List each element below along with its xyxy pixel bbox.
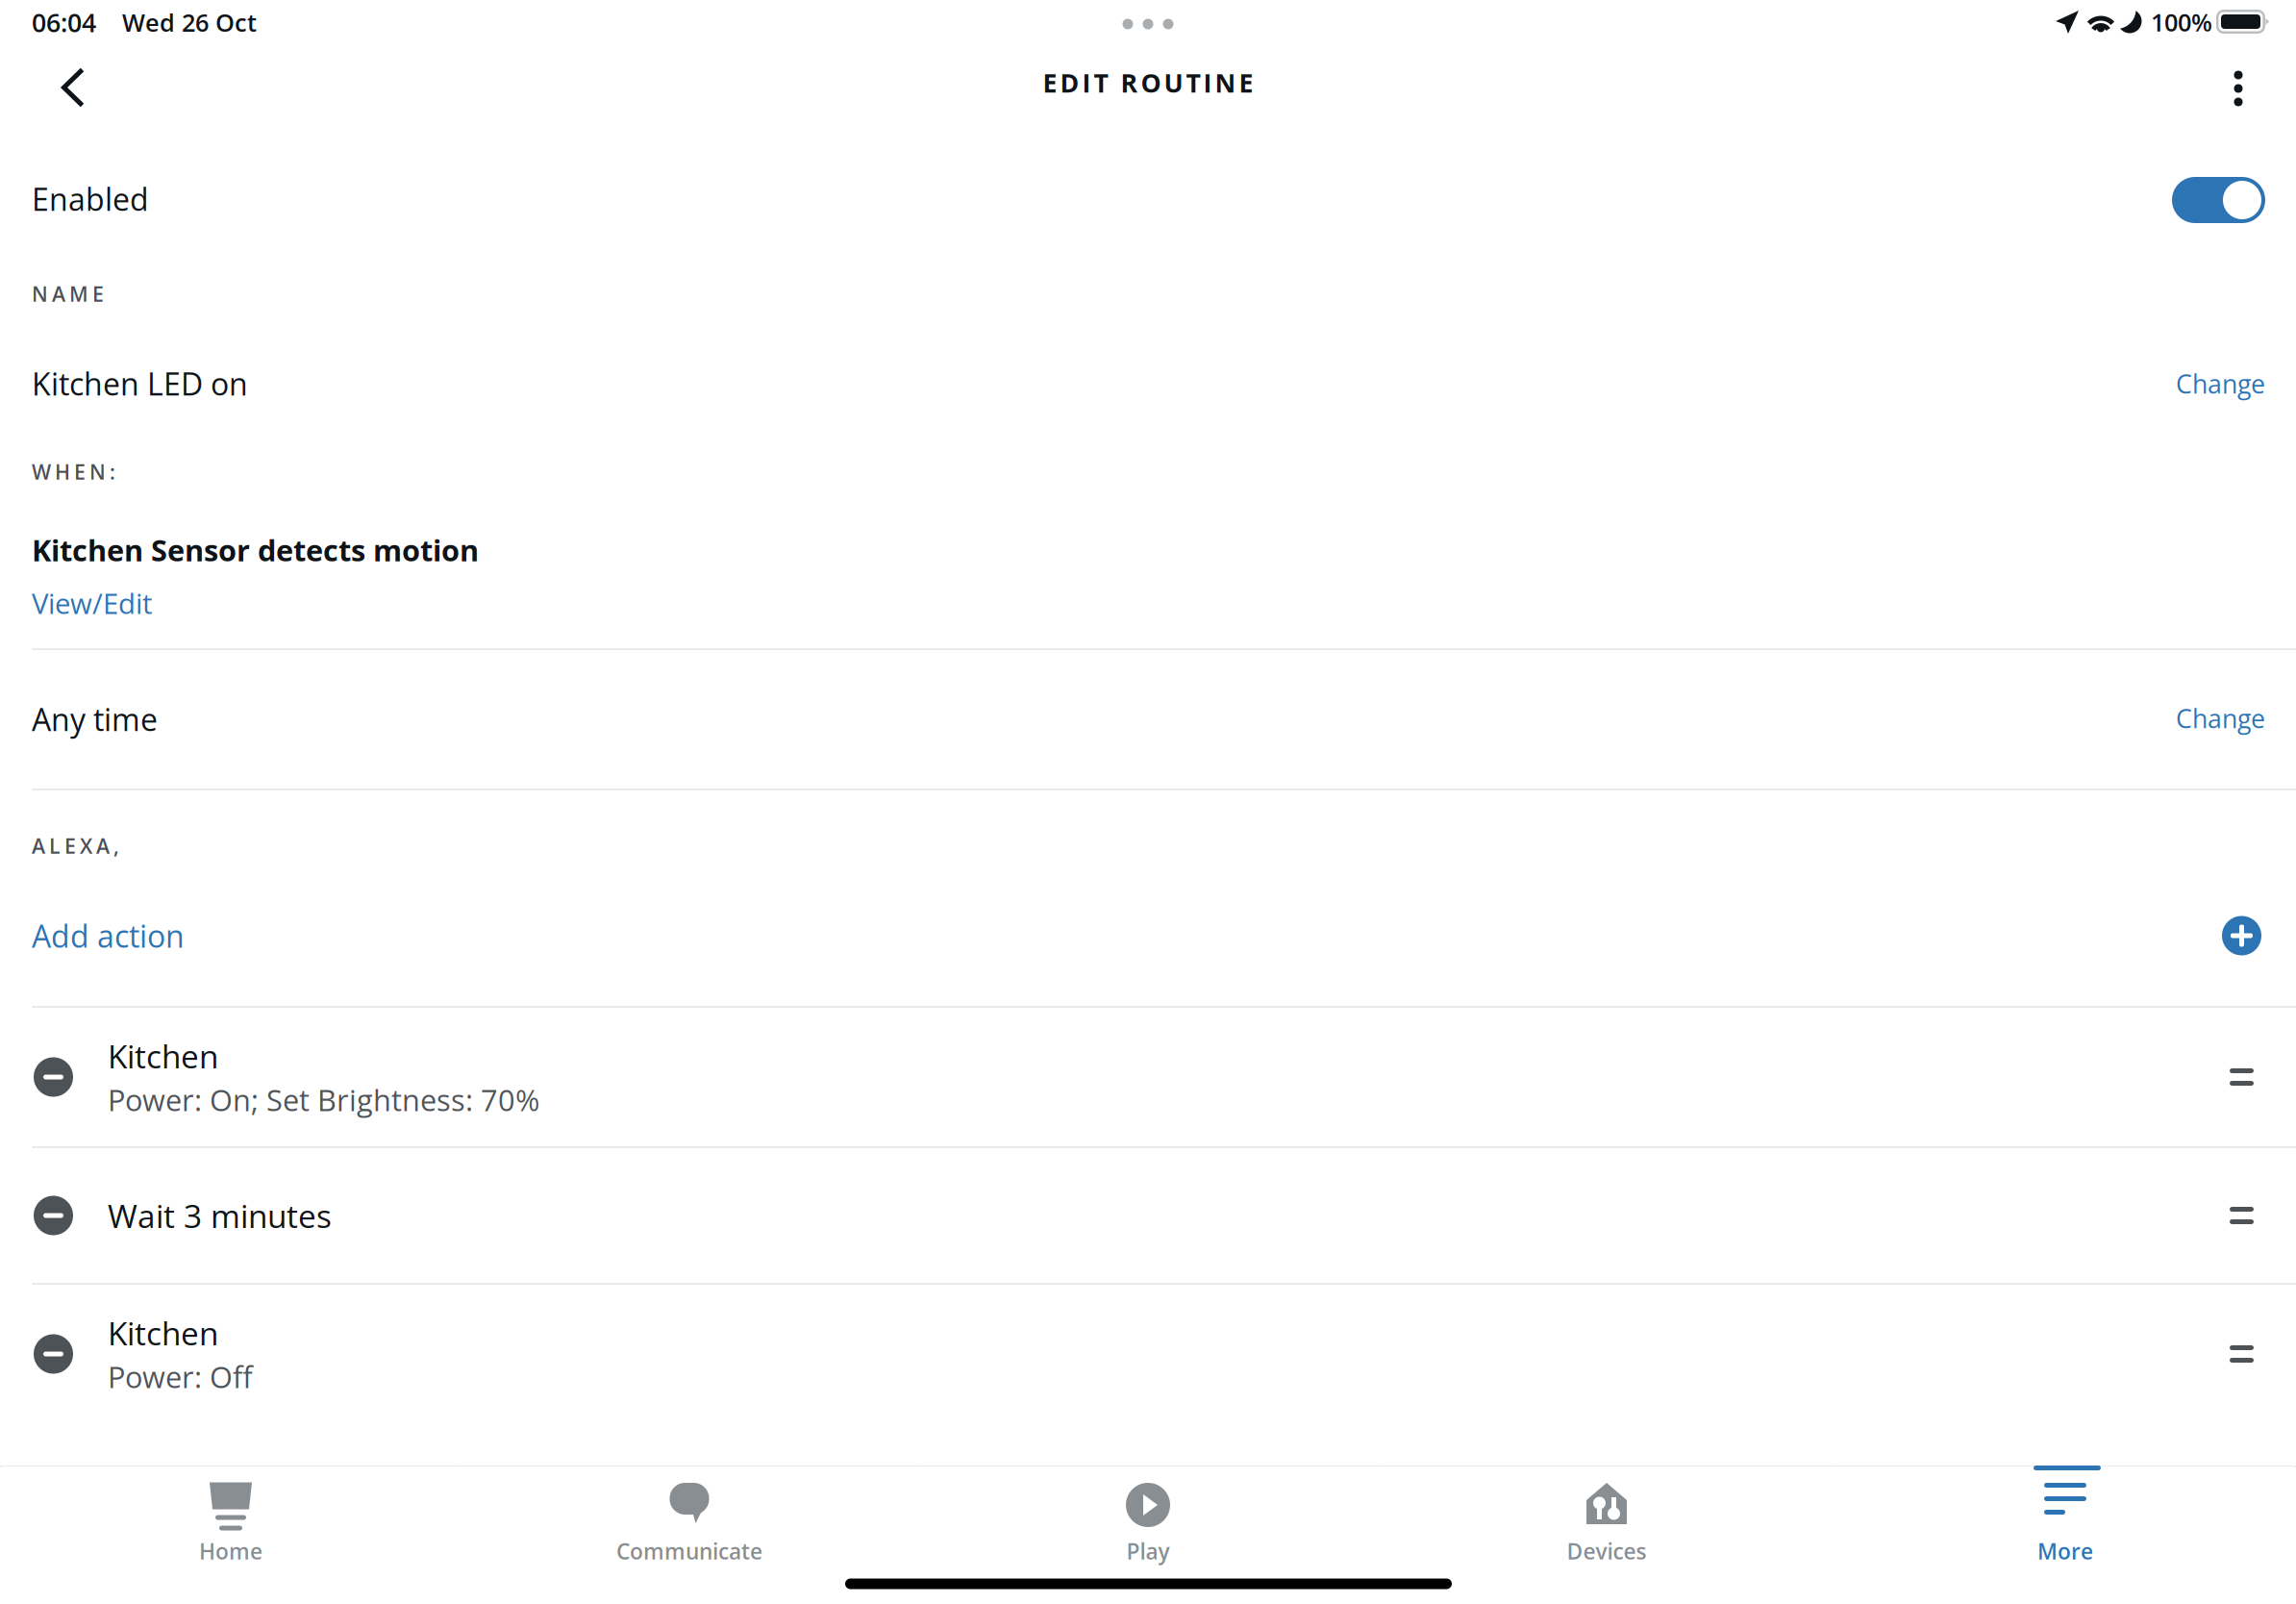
button[interactable]: Communicate <box>460 1466 919 1604</box>
button[interactable]: Home <box>1 1466 460 1604</box>
staticText: Kitchen <box>108 1034 218 1078</box>
staticText: Change <box>2176 366 2265 401</box>
button[interactable]: More options <box>2190 42 2286 135</box>
button[interactable]: Kitchen <box>0 1285 2296 1423</box>
button[interactable]: Back <box>20 41 126 134</box>
button[interactable]: Change <box>2073 689 2265 747</box>
staticText: Kitchen Sensor detects motion <box>32 530 479 570</box>
staticText: A L E X A , <box>32 832 119 860</box>
staticText: Any time <box>32 698 158 740</box>
staticText: Enabled <box>32 178 149 220</box>
staticText: View/Edit <box>32 584 152 622</box>
staticText: 100% <box>2151 6 2212 39</box>
staticText: E D I T R O U T I N E <box>1043 65 1253 100</box>
staticText: N A M E <box>32 280 104 308</box>
button[interactable]: Devices <box>1377 1466 1836 1604</box>
staticText: Kitchen LED on <box>32 363 248 404</box>
staticText: Devices <box>1567 1536 1647 1566</box>
staticText: Kitchen <box>108 1311 218 1355</box>
button[interactable]: View/Edit <box>32 579 243 627</box>
button[interactable]: Kitchen <box>0 1008 2296 1146</box>
button[interactable]: Wait 3 minutes <box>0 1148 2296 1283</box>
staticText: Power: On; Set Brightness: 70% <box>108 1080 539 1120</box>
staticText: Wait 3 minutes <box>108 1194 332 1237</box>
staticText: Play <box>1126 1536 1170 1566</box>
button[interactable]: Play <box>919 1466 1377 1604</box>
button[interactable]: Add action <box>32 897 2261 974</box>
staticText: Home <box>199 1536 262 1566</box>
button[interactable]: More <box>1836 1466 2295 1604</box>
button[interactable]: Change <box>2073 355 2265 413</box>
staticText: More <box>2037 1536 2093 1566</box>
staticText: Add action <box>32 915 185 957</box>
staticText: Communicate <box>616 1536 762 1566</box>
staticText: Power: Off <box>108 1357 253 1397</box>
staticText: 06:04 <box>32 5 96 40</box>
staticText: Change <box>2176 701 2265 736</box>
staticText: Wed 26 Oct <box>122 6 257 39</box>
button[interactable]: Enabled <box>2111 162 2265 238</box>
staticText: W H E N : <box>32 458 115 486</box>
